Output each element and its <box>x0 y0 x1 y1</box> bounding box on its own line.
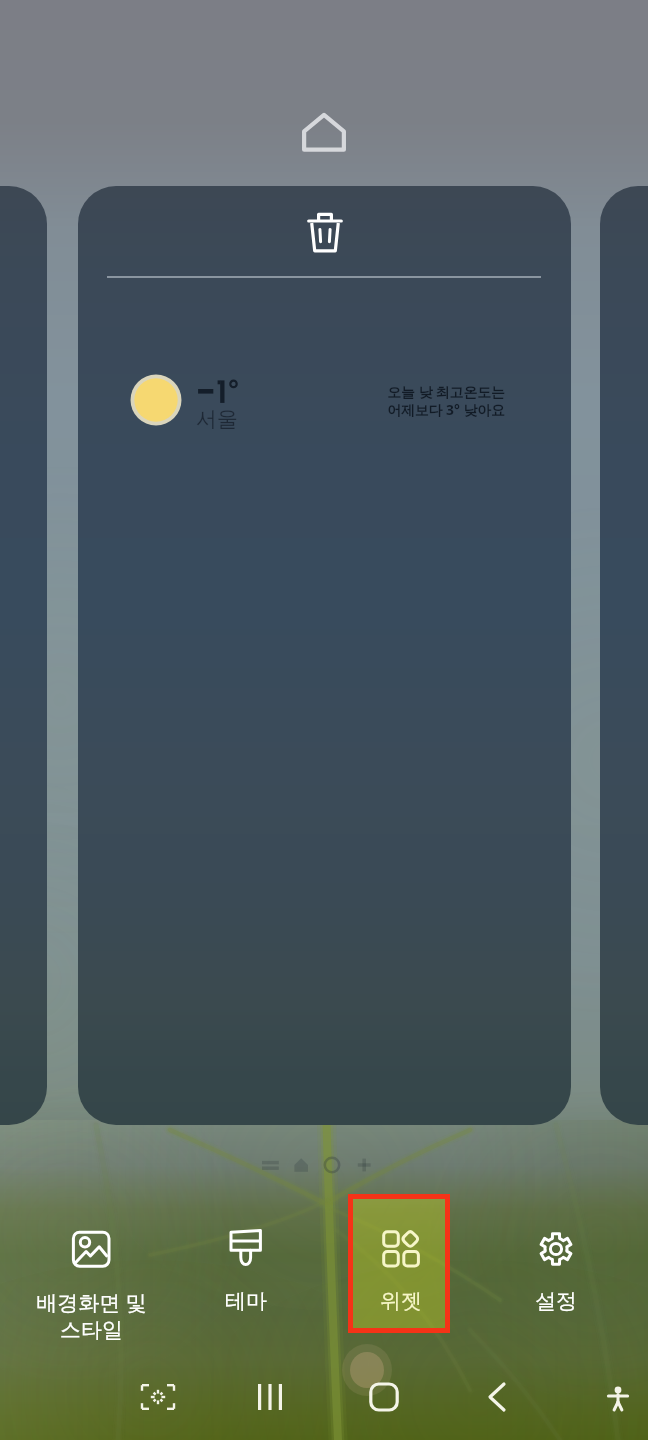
button[interactable]: 테마 <box>170 1194 322 1354</box>
button[interactable]: Next page <box>600 186 648 1125</box>
button[interactable]: 위젯 <box>325 1194 477 1354</box>
button[interactable]: Accessibility <box>590 1369 646 1425</box>
button[interactable]: Home screen <box>296 106 352 162</box>
button[interactable]: Previous page <box>0 186 47 1125</box>
button[interactable]: Remove page <box>295 203 355 263</box>
button[interactable]: Back <box>469 1369 525 1425</box>
button[interactable]: Screenshot <box>130 1369 186 1425</box>
button[interactable]: Recent apps <box>242 1369 298 1425</box>
button[interactable]: 설정 <box>480 1194 632 1354</box>
staticText: 오늘 낮 최고온도는 어제보다 3° 낮아요 <box>387 382 505 419</box>
button[interactable]: Home <box>356 1369 412 1425</box>
staticText: 위젯 <box>380 1288 422 1314</box>
staticText: 설정 <box>535 1288 577 1314</box>
button[interactable]: 배경화면 및 스타일 <box>15 1194 167 1354</box>
staticText: 테마 <box>225 1288 267 1314</box>
staticText: 서울 <box>196 406 238 432</box>
staticText: 배경화면 및 스타일 <box>36 1288 147 1343</box>
